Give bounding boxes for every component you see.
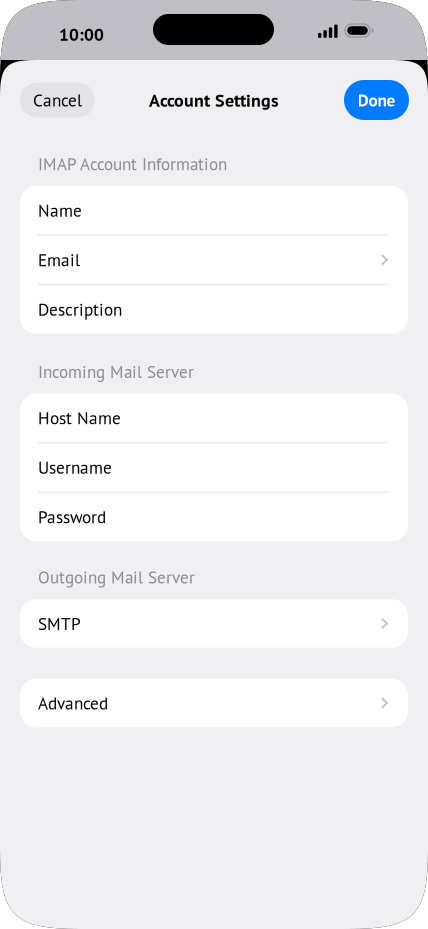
staticText: Advanced [38,692,108,714]
staticText: Account Settings [149,88,279,112]
button[interactable]: Cancel [20,82,95,117]
button[interactable]: Password [20,493,408,541]
button[interactable]: SMTP [20,599,408,648]
staticText: Cancel [33,89,82,111]
staticText: Username [38,456,112,479]
staticText: Incoming Mail Server [38,361,194,383]
staticText: Email [38,249,80,271]
button[interactable]: Username [20,443,408,492]
button[interactable]: Name [20,186,408,235]
staticText: SMTP [38,612,81,635]
button[interactable]: Host Name [20,394,408,442]
button[interactable]: Advanced [20,679,408,727]
staticText: Done [357,89,395,111]
staticText: Outgoing Mail Server [38,566,195,588]
staticText: 10:00 [59,23,104,45]
staticText: Name [38,199,82,221]
staticText: Host Name [38,407,121,429]
staticText: Description [38,298,122,320]
button[interactable]: Email [20,236,408,284]
staticText: Password [38,506,106,528]
button[interactable]: Description [20,285,408,334]
staticText: IMAP Account Information [38,153,227,175]
button[interactable]: Done [344,80,409,120]
